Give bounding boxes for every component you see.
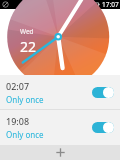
button[interactable]: 02:07 [0,75,120,109]
staticText: 02:07 [6,80,30,92]
staticText: Wed [20,27,34,36]
staticText: 17:07 [102,0,119,9]
button[interactable]: Add alarm [0,145,120,160]
button[interactable]: 19:08 [0,110,120,144]
button[interactable]: Alarm on [92,86,114,98]
button[interactable]: Alarm on [92,121,114,133]
staticText: Only once [6,94,44,105]
staticText: Only once [6,129,44,140]
staticText: 22 [20,37,37,56]
staticText: 19:08 [6,115,30,127]
